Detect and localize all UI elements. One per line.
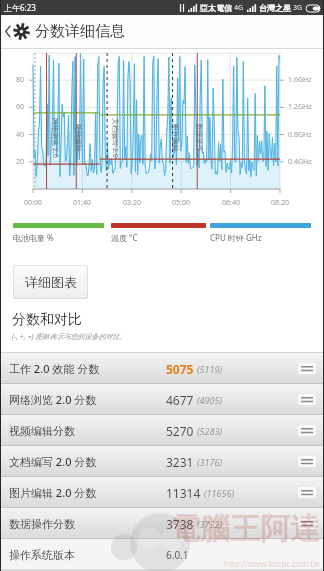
staticText: (3732) xyxy=(197,518,223,530)
staticText: 0.8GHz xyxy=(288,130,312,140)
button[interactable]: 工作 2.0 效能 分数 xyxy=(0,353,324,384)
staticText: (3176) xyxy=(197,456,223,468)
button[interactable]: Back xyxy=(0,15,324,48)
staticText: 文档编写 2.0 xyxy=(110,118,120,158)
staticText: 详细图表 xyxy=(25,274,77,290)
other: Back xyxy=(4,24,12,39)
button[interactable]: 操作系统版本 xyxy=(0,539,324,570)
staticText: http://www.kocpc.com.tw xyxy=(224,558,320,569)
button[interactable]: 视频编辑分数 xyxy=(0,415,324,446)
button[interactable]: Reorder xyxy=(298,363,316,374)
staticText: 01:40 xyxy=(73,198,91,208)
staticText: 4G xyxy=(234,3,244,13)
staticText: 06:40 xyxy=(222,198,240,208)
staticText: (4905) xyxy=(197,394,223,406)
staticText: 3G xyxy=(293,3,303,13)
staticText: 数据操作 xyxy=(194,123,203,151)
staticText: 视频编辑分数 xyxy=(9,424,75,438)
staticText: 12月11 2016 06:23 xyxy=(166,570,253,571)
button[interactable]: 网络浏览 2.0 分数 xyxy=(0,384,324,415)
staticText: 操作系统版本 xyxy=(9,548,75,562)
staticText: 60 xyxy=(16,102,25,112)
staticText: 工作 2.0 效能 分数 xyxy=(9,361,100,376)
staticText: 图片编辑 xyxy=(170,123,179,151)
button[interactable]: 详细图表 xyxy=(13,265,88,299)
staticText: 6.0.1 xyxy=(166,548,189,562)
staticText: (5119) xyxy=(197,363,223,375)
staticText: 11314 xyxy=(166,485,201,501)
staticText: 08:20 xyxy=(271,198,289,208)
button[interactable]: Reorder xyxy=(298,456,316,467)
button[interactable]: Reorder xyxy=(298,425,316,436)
staticText: (-, +, =) 图标表示与您的设备的对比。 xyxy=(12,332,127,342)
staticText: 上午6:23 xyxy=(4,2,36,13)
staticText: 3231 xyxy=(166,454,194,470)
button[interactable]: 图片编辑 2.0 分数 xyxy=(0,477,324,508)
staticText: 5270 xyxy=(166,423,194,439)
button[interactable]: 日期 xyxy=(0,570,324,571)
staticText: 0.4GHz xyxy=(288,157,312,167)
staticText: 网络浏览 2.0 xyxy=(50,118,60,158)
staticText: 40 xyxy=(16,130,25,140)
staticText: 亞太電信 xyxy=(200,3,232,13)
staticText: 电池电量 % xyxy=(13,232,54,243)
staticText: 80 xyxy=(16,75,25,85)
staticText: 温度 °C xyxy=(111,232,138,243)
staticText: 1.2GHz xyxy=(288,102,312,112)
staticText: 分数详细信息 xyxy=(35,22,125,41)
staticText: 03:20 xyxy=(123,198,141,208)
staticText: (5283) xyxy=(197,425,223,437)
staticText: 台灣之星 xyxy=(259,3,291,13)
staticText: 分数和对比 xyxy=(12,311,82,329)
button[interactable]: Reorder xyxy=(298,518,316,529)
staticText: 文档编写 2.0 分数 xyxy=(9,454,97,469)
staticText: 電腦王阿達 xyxy=(170,510,320,548)
staticText: 数据操作分数 xyxy=(9,517,75,531)
staticText: 3738 xyxy=(166,516,194,532)
staticText: 05:00 xyxy=(172,198,190,208)
button[interactable]: Reorder xyxy=(298,487,316,498)
button[interactable]: 文档编写 2.0 分数 xyxy=(0,446,324,477)
staticText: 图片编辑 2.0 分数 xyxy=(9,485,97,500)
button[interactable]: 数据操作分数 xyxy=(0,508,324,539)
button[interactable]: Reorder xyxy=(298,394,316,405)
staticText: 视频编辑 xyxy=(73,123,82,151)
staticText: 00:00 xyxy=(24,198,42,208)
staticText: 5075 xyxy=(166,361,194,377)
staticText: 网络浏览 2.0 分数 xyxy=(9,392,97,407)
staticText: (11656) xyxy=(204,487,235,499)
staticText: CPU 时钟 GHz xyxy=(210,232,262,243)
staticText: 20 xyxy=(16,157,25,167)
staticText: 4677 xyxy=(166,392,194,408)
staticText: 1.6GHz xyxy=(288,75,312,85)
